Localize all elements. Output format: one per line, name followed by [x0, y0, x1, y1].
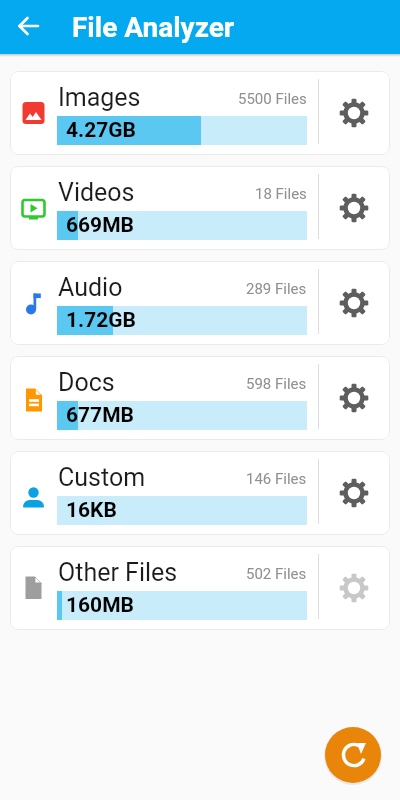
button[interactable]: Images — [10, 71, 390, 155]
button[interactable] — [336, 285, 372, 321]
staticText: 677MB — [66, 403, 134, 428]
staticText: Custom — [58, 463, 146, 492]
staticText: Other Files — [58, 558, 178, 587]
button[interactable]: Docs — [10, 356, 390, 440]
staticText: 4.27GB — [66, 118, 136, 143]
staticText: 16KB — [66, 498, 117, 523]
button[interactable] — [336, 570, 372, 606]
staticText: Videos — [58, 178, 135, 207]
staticText: Docs — [58, 368, 115, 397]
button[interactable] — [325, 727, 381, 783]
staticText: 502 Files — [246, 565, 307, 583]
staticText: Images — [58, 83, 141, 112]
button[interactable] — [336, 475, 372, 511]
button[interactable]: Audio — [10, 261, 390, 345]
button[interactable] — [0, 0, 56, 54]
button[interactable] — [336, 190, 372, 226]
button[interactable] — [336, 380, 372, 416]
button[interactable] — [336, 95, 372, 131]
staticText: 669MB — [66, 213, 134, 238]
staticText: 598 Files — [246, 375, 307, 393]
staticText: File Analyzer — [72, 11, 235, 44]
staticText: 1.72GB — [66, 308, 136, 333]
staticText: 289 Files — [246, 280, 307, 298]
staticText: 146 Files — [246, 470, 307, 488]
button[interactable]: Videos — [10, 166, 390, 250]
staticText: 18 Files — [255, 185, 307, 203]
button[interactable]: Custom — [10, 451, 390, 535]
staticText: 5500 Files — [238, 90, 307, 108]
button[interactable]: Other Files — [10, 546, 390, 630]
staticText: 160MB — [66, 593, 134, 618]
staticText: Audio — [58, 273, 123, 302]
